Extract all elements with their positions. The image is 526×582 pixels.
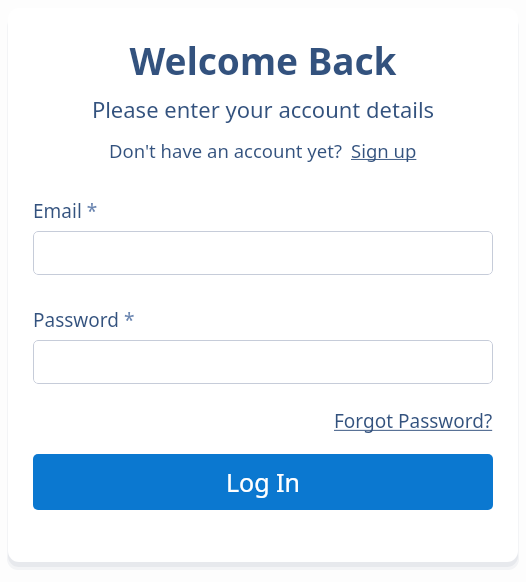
staticText: Log In: [226, 465, 301, 499]
staticText: Password *: [33, 307, 135, 333]
staticText: Please enter your account details: [8, 94, 518, 124]
button[interactable]: Password input field: [33, 340, 493, 384]
button[interactable]: Sign up: [351, 138, 417, 163]
button[interactable]: Log In: [33, 454, 493, 510]
button[interactable]: Forgot Password?: [334, 408, 493, 434]
staticText: Welcome Back: [8, 35, 518, 85]
button[interactable]: Email input field: [33, 231, 493, 275]
staticText: Forgot Password?: [334, 408, 493, 434]
staticText: Email *: [33, 198, 98, 224]
staticText: Don't have an account yet?: [109, 138, 342, 163]
staticText: Sign up: [351, 138, 417, 163]
